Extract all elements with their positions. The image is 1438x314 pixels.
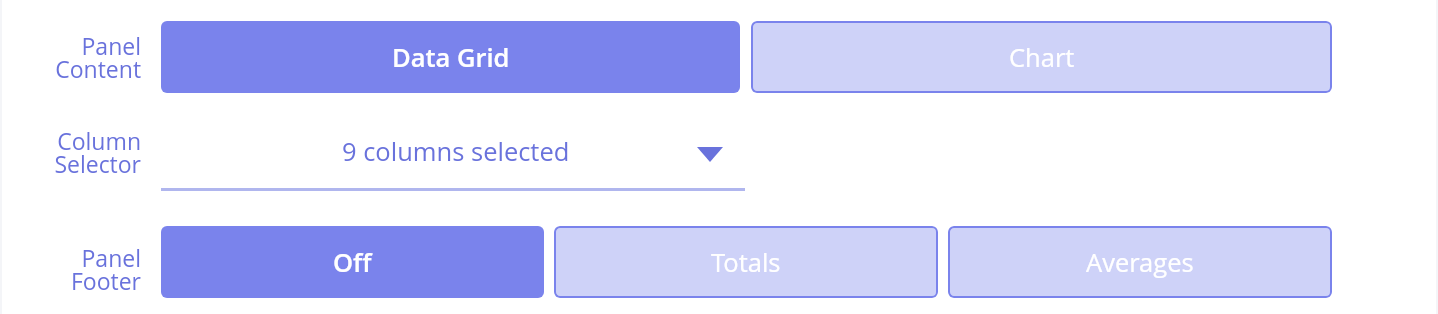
other: Open column selector [697,147,723,162]
button[interactable]: Totals [554,226,938,298]
staticText: Column Selector [0,125,141,180]
staticText: Totals [711,245,781,280]
button[interactable]: Averages [948,226,1332,298]
button[interactable]: Data Grid [161,21,740,93]
staticText: Data Grid [392,40,510,75]
staticText: 9 columns selected [342,134,570,169]
button[interactable]: 9 columns selected [161,130,745,191]
staticText: Panel Footer [0,242,141,297]
staticText: Off [333,245,372,280]
button[interactable]: Chart [751,21,1332,93]
button[interactable]: Off [161,226,544,298]
staticText: Chart [1009,40,1075,75]
staticText: Averages [1086,245,1194,280]
staticText: Panel Content [0,30,141,85]
